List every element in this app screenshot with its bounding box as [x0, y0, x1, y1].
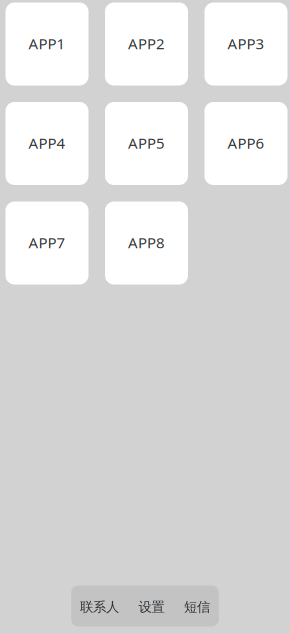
button[interactable]: APP5	[105, 102, 188, 185]
button[interactable]: APP1	[5, 2, 88, 85]
staticText: 联系人	[80, 599, 119, 615]
staticText: APP8	[128, 232, 165, 253]
button[interactable]: APP2	[105, 2, 188, 85]
button[interactable]: APP3	[204, 2, 287, 85]
staticText: 设置	[138, 599, 164, 615]
staticText: APP2	[128, 33, 165, 54]
button[interactable]: APP8	[105, 201, 188, 284]
button[interactable]: APP6	[204, 102, 287, 185]
staticText: APP5	[128, 133, 165, 153]
button[interactable]: APP4	[5, 102, 88, 185]
staticText: APP1	[28, 33, 65, 54]
button[interactable]: 短信	[184, 585, 210, 626]
button[interactable]: 设置	[138, 585, 164, 626]
staticText: APP7	[28, 232, 65, 253]
staticText: APP6	[227, 133, 264, 153]
staticText: APP3	[227, 33, 264, 54]
staticText: 短信	[184, 599, 210, 615]
button[interactable]: APP7	[5, 201, 88, 284]
button[interactable]: 联系人	[80, 585, 119, 626]
staticText: APP4	[28, 133, 65, 153]
